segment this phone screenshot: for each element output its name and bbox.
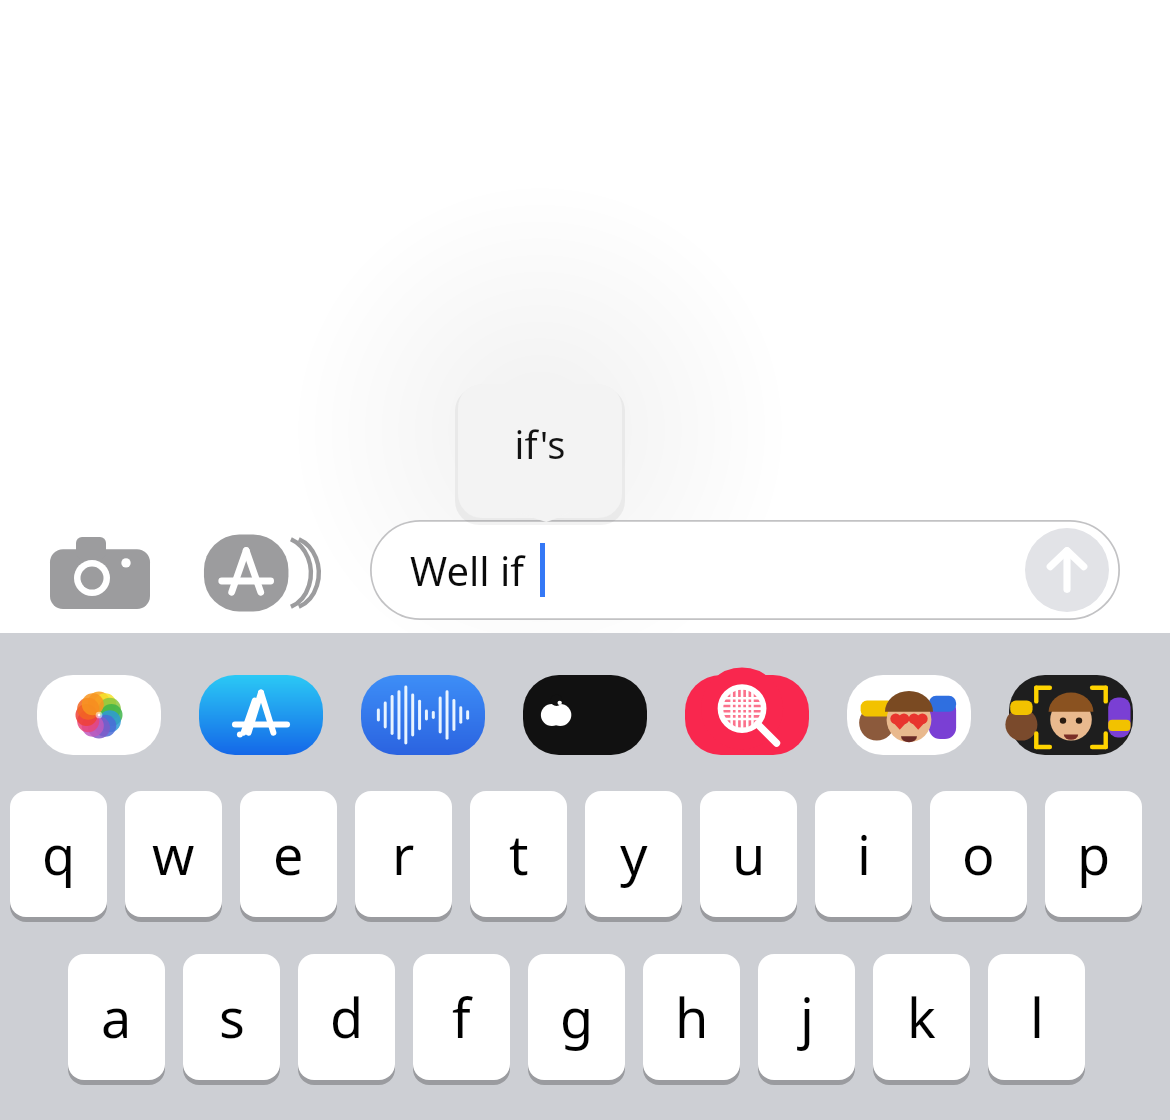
staticText: h (675, 980, 709, 1054)
button[interactable]: Image search (685, 675, 809, 755)
button[interactable]: App Store (199, 675, 323, 755)
button[interactable]: k (873, 954, 970, 1080)
staticText: Well if (410, 543, 525, 597)
staticText: i (857, 817, 871, 891)
button[interactable]: e (240, 791, 337, 917)
button[interactable]: q (10, 791, 107, 917)
button[interactable]: g (528, 954, 625, 1080)
staticText: g (560, 980, 594, 1054)
button[interactable]: y (585, 791, 682, 917)
staticText: if's (458, 418, 622, 470)
staticText: y (620, 817, 648, 891)
staticText: q (42, 817, 76, 891)
staticText: d (330, 980, 364, 1054)
button[interactable]: Audio messages (361, 675, 485, 755)
button[interactable]: p (1045, 791, 1142, 917)
staticText: s (219, 980, 245, 1054)
button[interactable]: Well if (370, 520, 1120, 620)
button[interactable]: l (988, 954, 1085, 1080)
button[interactable]: i (815, 791, 912, 917)
staticText: o (962, 817, 995, 891)
button[interactable]: Memoji stickers (847, 675, 971, 755)
button[interactable]: w (125, 791, 222, 917)
staticText: k (907, 980, 936, 1054)
staticText: j (800, 980, 814, 1054)
staticText: t (509, 817, 529, 891)
staticText: f (452, 980, 471, 1054)
button[interactable]: u (700, 791, 797, 917)
staticText: w (152, 817, 195, 891)
button[interactable]: j (758, 954, 855, 1080)
button[interactable]: Send (1025, 528, 1109, 612)
staticText: e (273, 817, 304, 891)
button[interactable]: s (183, 954, 280, 1080)
button[interactable]: f (413, 954, 510, 1080)
button[interactable]: Apple Cash (523, 675, 647, 755)
staticText: r (392, 817, 415, 891)
staticText: l (1030, 980, 1044, 1054)
button[interactable]: h (643, 954, 740, 1080)
button[interactable]: d (298, 954, 395, 1080)
button[interactable]: o (930, 791, 1027, 917)
button[interactable]: Apps (200, 533, 332, 613)
button[interactable]: Camera (50, 537, 150, 609)
button[interactable]: Memoji (1009, 675, 1133, 755)
button[interactable]: Photos (37, 675, 161, 755)
staticText: p (1077, 817, 1111, 891)
button[interactable]: t (470, 791, 567, 917)
staticText: a (101, 980, 132, 1054)
staticText: u (732, 817, 766, 891)
button[interactable]: r (355, 791, 452, 917)
button[interactable]: a (68, 954, 165, 1080)
